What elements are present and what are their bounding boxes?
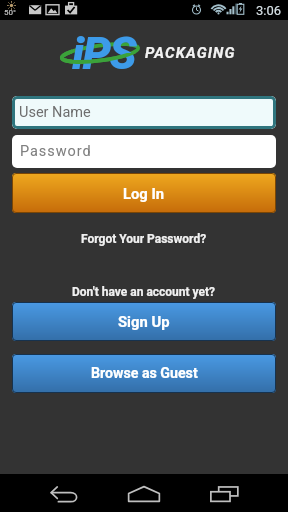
staticText: User Name [19,104,91,121]
staticText: iPS [72,27,135,80]
staticText: 3:06 [256,3,282,18]
staticText: Don't have an account yet? [72,285,216,299]
staticText: Forgot Your Password? [81,232,207,246]
button[interactable]: Log In [12,173,276,213]
button[interactable]: Password [12,135,276,168]
button[interactable]: Recent apps [200,479,248,508]
button[interactable]: Back [40,479,88,508]
staticText: Sign Up [118,313,170,330]
button[interactable]: Sign Up [12,302,276,341]
button[interactable]: Forgot Your Password? [0,232,288,246]
button[interactable]: Home [120,479,168,508]
button[interactable]: User Name [12,96,276,129]
staticText: Password [20,143,92,160]
staticText: PACKAGING [145,44,236,62]
button[interactable]: Browse as Guest [12,354,276,393]
staticText: Browse as Guest [91,365,198,382]
staticText: Log In [123,185,165,202]
staticText: 50° [4,8,16,17]
